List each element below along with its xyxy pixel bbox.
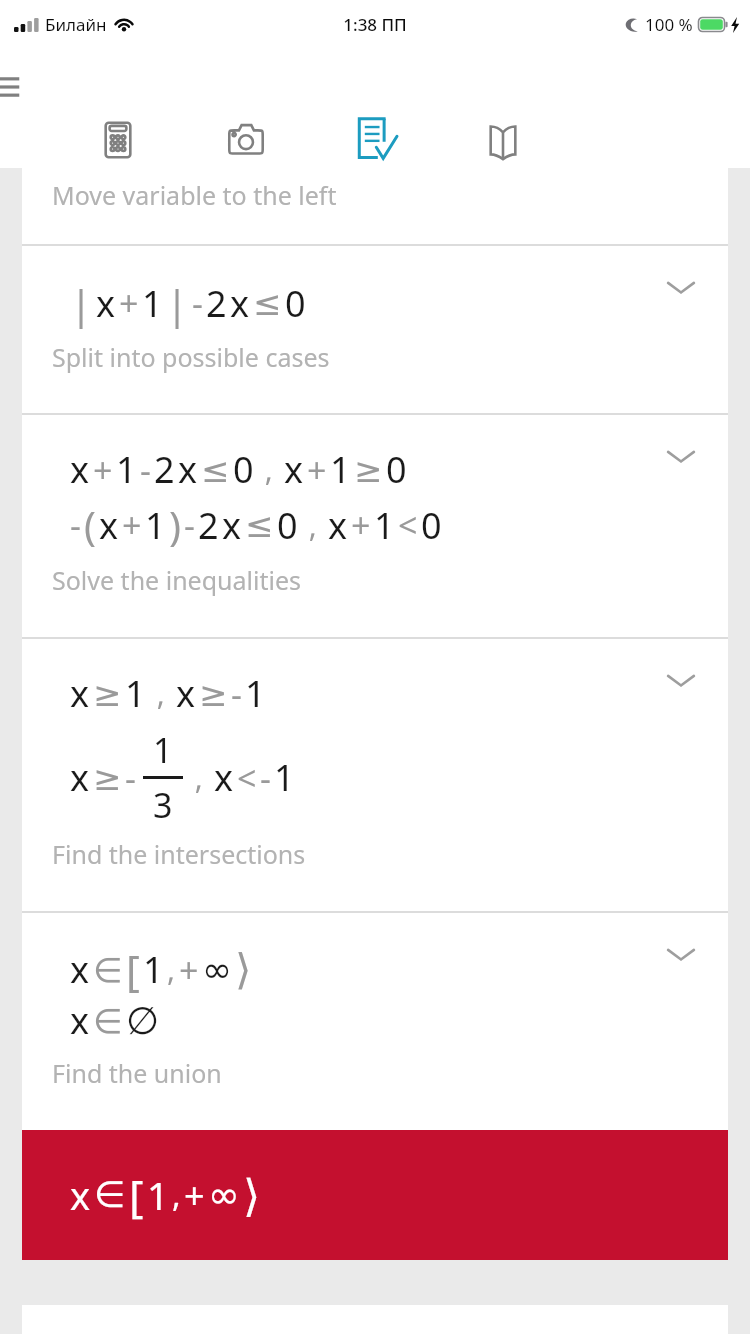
button[interactable]: Expand step [664,937,698,971]
button[interactable]: x [22,639,728,911]
staticText: 1 [143,945,164,994]
staticText: 2 [154,445,175,494]
button[interactable]: Expand step [664,270,698,304]
staticText: x [230,279,250,328]
staticText: + [307,447,327,493]
staticText: 1 [374,501,395,550]
staticText: x [284,445,304,494]
button[interactable]: Tab [78,100,158,180]
staticText: ∅ [126,999,160,1043]
staticText: 1:38 ПП [343,13,407,36]
staticText: [ [129,1165,144,1225]
staticText: 3 [153,782,173,828]
staticText: ≥ [93,674,122,714]
staticText: ≤ [245,505,274,545]
staticText: x [222,501,242,550]
staticText: ∞ [208,1173,240,1217]
staticText: Find the union [52,1056,222,1090]
staticText: , [172,1173,181,1217]
staticText: x [70,669,90,718]
staticText: x [328,501,348,550]
staticText: x [99,501,119,550]
staticText: , [257,449,281,490]
staticText: 1 [153,727,173,773]
staticText: + [122,502,142,548]
button[interactable]: x [22,913,728,1130]
staticText: - [125,755,136,801]
staticText: Move variable to the left [52,178,337,212]
staticText: ( [84,498,96,552]
staticText: + [179,947,199,993]
staticText: ≥ [199,674,228,714]
staticText: x [176,669,196,718]
staticText: 0 [285,279,306,328]
button[interactable]: x [22,1130,728,1260]
button[interactable]: Solution [311,108,437,216]
staticText: 1 [145,501,166,550]
button[interactable]: x [22,415,728,637]
staticText: ∈ [94,1174,126,1216]
button[interactable]: | [22,246,728,413]
staticText: - [184,502,195,548]
staticText: [ [126,941,140,998]
staticText: Find the intersections [52,837,306,871]
button[interactable]: Expand step [664,663,698,697]
staticText: 0 [386,445,407,494]
staticText: + [184,1171,205,1220]
staticText: 1 [142,279,163,328]
staticText: Solve the inequalities [52,563,301,597]
staticText: - [192,280,203,326]
staticText: ∈ [93,1001,123,1041]
staticText: ≤ [201,450,230,490]
staticText: 1 [116,445,137,494]
staticText: , [187,757,211,798]
staticText: - [140,447,151,493]
staticText: x [70,996,90,1045]
staticText: 0 [421,501,442,550]
button[interactable]: Expand step [664,439,698,473]
staticText: 1 [274,753,295,802]
staticText: + [119,280,139,326]
staticText: Solution [333,170,415,199]
staticText: 100 % [645,13,693,36]
staticText: 1 [330,445,351,494]
staticText: x [214,753,234,802]
staticText: - [70,502,81,548]
button[interactable]: Move variable to the left [22,168,728,244]
staticText: x [70,753,90,802]
staticText: ∈ [93,950,123,990]
staticText: ≥ [354,450,383,490]
staticText: < [237,755,257,801]
staticText: 0 [233,445,254,494]
staticText: 1 [245,669,266,718]
staticText: , [167,949,176,990]
staticText: | [166,276,189,330]
staticText: x [70,445,90,494]
staticText: | [70,276,93,330]
staticText: + [351,502,371,548]
staticText: ) [169,498,181,552]
staticText: Билайн [45,13,107,36]
staticText: ⟩ [243,1170,261,1221]
staticText: 1 [147,1169,169,1221]
staticText: - [231,671,242,717]
button[interactable]: Tab [206,100,286,180]
staticText: 1 [125,669,146,718]
staticText: + [93,447,113,493]
staticText: ≤ [253,283,282,323]
button[interactable]: Menu [0,70,22,104]
staticText: 0 [277,501,298,550]
staticText: x [70,945,90,994]
staticText: x [70,1169,91,1221]
button[interactable]: Tab [463,100,543,180]
staticText: Split into possible cases [52,340,330,374]
staticText: ≥ [93,758,122,798]
staticText: < [398,502,418,548]
staticText: 2 [206,279,227,328]
staticText: ⟩ [235,945,252,994]
staticText: - [260,755,271,801]
staticText: x [178,445,198,494]
staticText: ∞ [202,949,232,991]
staticText: , [149,673,173,714]
staticText: x [96,279,116,328]
